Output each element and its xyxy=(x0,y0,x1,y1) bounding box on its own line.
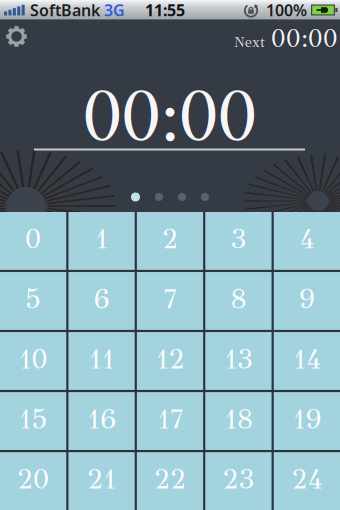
staticText: 6 xyxy=(94,282,110,316)
staticText: 22 xyxy=(154,462,186,496)
staticText: 11 xyxy=(89,342,115,376)
staticText: 15 xyxy=(19,402,48,436)
button[interactable]: 21 xyxy=(68,452,135,510)
staticText: 00:00 xyxy=(82,75,258,159)
button[interactable]: 13 xyxy=(205,332,271,390)
button[interactable]: 5 xyxy=(0,272,66,330)
button[interactable]: 22 xyxy=(137,452,203,510)
button[interactable]: 4 xyxy=(274,212,340,270)
button[interactable]: 9 xyxy=(274,272,340,330)
staticText: 18 xyxy=(224,402,253,436)
staticText: 3 xyxy=(230,222,246,256)
staticText: Next xyxy=(234,33,265,51)
button[interactable]: 7 xyxy=(137,272,203,330)
staticText: 24 xyxy=(291,462,322,496)
button[interactable]: 0 xyxy=(0,212,66,270)
staticText: 13 xyxy=(224,342,253,376)
button[interactable]: Settings xyxy=(6,26,27,47)
staticText: 4 xyxy=(299,222,314,256)
staticText: 2 xyxy=(162,222,178,256)
button[interactable]: 14 xyxy=(274,332,340,390)
staticText: 17 xyxy=(157,402,183,436)
staticText: 23 xyxy=(222,462,254,496)
button[interactable]: 11 xyxy=(68,332,135,390)
button[interactable]: 8 xyxy=(205,272,271,330)
staticText: 12 xyxy=(155,342,184,376)
staticText: 16 xyxy=(87,402,116,436)
staticText: 5 xyxy=(25,282,41,316)
button[interactable]: 10 xyxy=(0,332,66,390)
button[interactable]: 20 xyxy=(0,452,66,510)
staticText: 1 xyxy=(95,222,108,256)
button[interactable]: 19 xyxy=(274,392,340,450)
staticText: 00:00 xyxy=(271,23,338,54)
staticText: 0 xyxy=(25,222,41,256)
button[interactable]: 2 xyxy=(137,212,203,270)
button[interactable]: 12 xyxy=(137,332,203,390)
button[interactable]: 1 xyxy=(68,212,135,270)
button[interactable]: 3 xyxy=(205,212,271,270)
staticText: 7 xyxy=(163,282,176,316)
button[interactable]: 23 xyxy=(205,452,271,510)
staticText: 14 xyxy=(293,342,321,376)
staticText: 3G xyxy=(104,0,125,21)
button[interactable]: 15 xyxy=(0,392,66,450)
button[interactable]: 16 xyxy=(68,392,135,450)
staticText: 8 xyxy=(230,282,246,316)
button[interactable]: 17 xyxy=(137,392,203,450)
staticText: 11:55 xyxy=(145,0,185,21)
staticText: 9 xyxy=(299,282,315,316)
staticText: 20 xyxy=(17,462,49,496)
staticText: 10 xyxy=(19,342,48,376)
button[interactable]: 18 xyxy=(205,392,271,450)
button[interactable]: 6 xyxy=(68,272,135,330)
staticText: 19 xyxy=(292,402,321,436)
staticText: 21 xyxy=(87,462,116,496)
staticText: 100% xyxy=(266,0,307,21)
staticText: SoftBank xyxy=(30,0,100,21)
button[interactable]: 24 xyxy=(274,452,340,510)
